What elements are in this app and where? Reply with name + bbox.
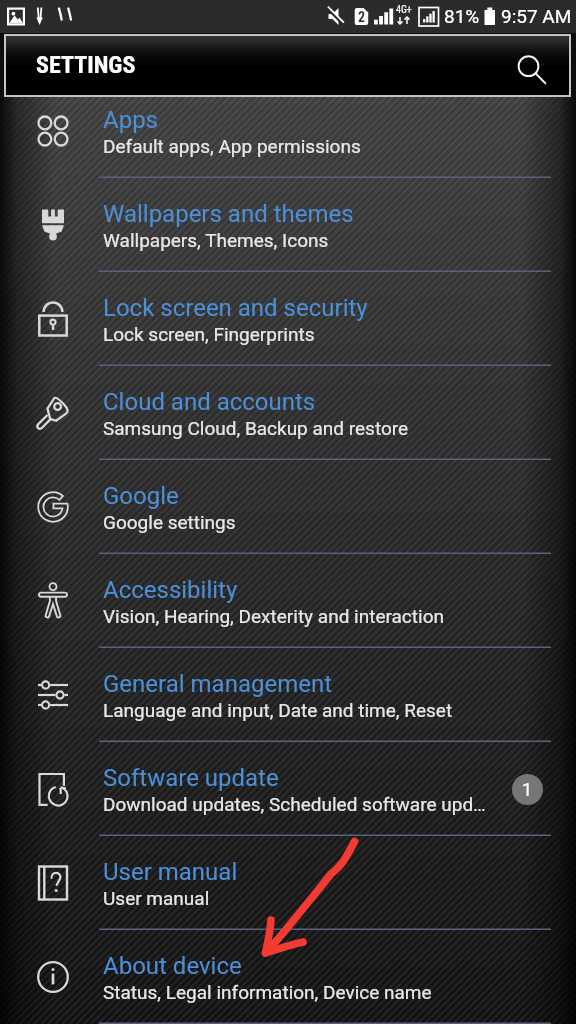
button[interactable]: General management <box>0 648 576 742</box>
button[interactable]: About device <box>0 930 576 1024</box>
button[interactable]: Search <box>505 40 557 92</box>
staticText: Google settings <box>103 511 236 533</box>
staticText: 1 <box>522 779 533 800</box>
staticText: Samsung Cloud, Backup and restore <box>103 417 409 439</box>
staticText: Status, Legal information, Device name <box>103 981 432 1003</box>
staticText: Download updates, Scheduled software upd… <box>103 793 486 815</box>
staticText: User manual <box>103 887 210 909</box>
staticText: Software update <box>103 764 279 792</box>
button[interactable]: SETTINGS <box>6 36 569 95</box>
staticText: Wallpapers, Themes, Icons <box>103 229 329 251</box>
staticText: Lock screen and security <box>103 294 368 322</box>
staticText: 9:57 AM <box>501 5 572 27</box>
staticText: About device <box>103 952 242 980</box>
button[interactable]: User manual <box>0 836 576 930</box>
staticText: SETTINGS <box>36 51 136 79</box>
staticText: Vision, Hearing, Dexterity and interacti… <box>103 605 444 627</box>
button[interactable]: Apps <box>0 84 576 178</box>
staticText: Apps <box>103 106 158 134</box>
button[interactable]: Software update <box>0 742 576 836</box>
staticText: 2 <box>358 9 366 25</box>
staticText: Wallpapers and themes <box>103 200 354 228</box>
button[interactable]: Wallpapers and themes <box>0 178 576 272</box>
staticText: 4G+ <box>396 4 412 16</box>
staticText: User manual <box>103 858 238 886</box>
staticText: General management <box>103 670 333 698</box>
staticText: Accessibility <box>103 576 238 604</box>
button[interactable]: Google <box>0 460 576 554</box>
button[interactable]: Cloud and accounts <box>0 366 576 460</box>
staticText: Google <box>103 482 179 510</box>
staticText: Cloud and accounts <box>103 388 316 416</box>
staticText: Default apps, App permissions <box>103 135 361 157</box>
button[interactable]: Lock screen and security <box>0 272 576 366</box>
button[interactable]: Accessibility <box>0 554 576 648</box>
staticText: 81% <box>444 5 480 27</box>
staticText: Language and input, Date and time, Reset <box>103 699 453 721</box>
staticText: Lock screen, Fingerprints <box>103 323 315 345</box>
